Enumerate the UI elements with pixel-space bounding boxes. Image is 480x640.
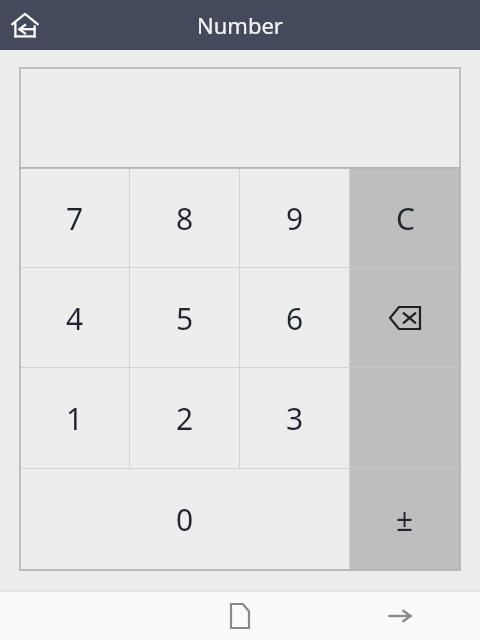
- staticText: 6: [286, 298, 304, 339]
- staticText: 1: [66, 398, 84, 439]
- button[interactable]: Next: [320, 592, 480, 640]
- button[interactable]: 5: [130, 268, 240, 368]
- button[interactable]: ±: [350, 469, 460, 570]
- button[interactable]: 1: [20, 368, 130, 469]
- staticText: Number: [197, 10, 283, 40]
- button[interactable]: Home: [0, 0, 50, 50]
- staticText: C: [396, 198, 415, 239]
- button[interactable]: 0: [20, 469, 350, 570]
- button[interactable]: 3: [240, 368, 350, 469]
- button[interactable]: Document: [160, 592, 320, 640]
- staticText: 9: [286, 198, 304, 239]
- staticText: 3: [286, 398, 304, 439]
- button[interactable]: Backspace: [350, 268, 460, 368]
- staticText: 4: [66, 298, 84, 339]
- button[interactable]: 2: [130, 368, 240, 469]
- staticText: 5: [176, 298, 194, 339]
- staticText: 8: [176, 198, 194, 239]
- button[interactable]: C: [350, 168, 460, 268]
- button[interactable]: 4: [20, 268, 130, 368]
- button[interactable]: 8: [130, 168, 240, 268]
- button[interactable]: 9: [240, 168, 350, 268]
- button[interactable]: 6: [240, 268, 350, 368]
- staticText: 2: [176, 398, 194, 439]
- button[interactable]: 7: [20, 168, 130, 268]
- staticText: 7: [66, 198, 84, 239]
- staticText: ±: [396, 499, 414, 540]
- staticText: 0: [176, 499, 194, 540]
